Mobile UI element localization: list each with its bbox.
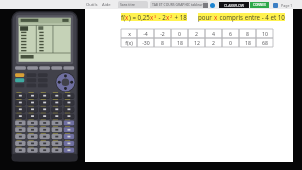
staticText: 0: [229, 39, 232, 46]
staticText: 8: [246, 30, 249, 37]
staticText: Page 1: [281, 3, 293, 8]
staticText: + 18: [173, 13, 187, 21]
staticText: ) = 0,25: [129, 13, 150, 21]
staticText: 0: [178, 30, 181, 37]
staticText: 8: [161, 39, 164, 46]
staticText: CONNEX: [253, 3, 266, 7]
button[interactable]: CONNEX: [250, 2, 269, 8]
staticText: -30: [142, 39, 150, 46]
staticText: f(x): [125, 39, 133, 46]
staticText: 2: [195, 30, 198, 37]
staticText: x: [128, 30, 131, 37]
button[interactable]: Graphing calculator video: [0, 9, 79, 167]
staticText: 18: [245, 39, 251, 46]
staticText: Aide: [102, 2, 111, 8]
staticText: 18: [177, 39, 183, 46]
staticText: 10: [262, 30, 268, 37]
button[interactable]: TAB ET COURS GRAPHIC tableur: [150, 1, 208, 8]
staticText: x: [214, 13, 218, 21]
staticText: 4: [212, 30, 215, 37]
staticText: x: [166, 13, 170, 21]
staticText: f(: [121, 13, 125, 21]
staticText: pour: [198, 13, 214, 21]
staticText: compris entre - 4 et 10: [218, 13, 285, 21]
staticText: Outils: [86, 2, 98, 8]
button[interactable]: CLASSFLOW: [219, 2, 249, 8]
staticText: x: [125, 13, 129, 21]
staticText: 12: [194, 39, 200, 46]
button[interactable]: Account: [210, 3, 215, 8]
staticText: x: [150, 13, 154, 21]
staticText: 68: [262, 39, 268, 46]
staticText: CLASSFLOW: [224, 3, 245, 8]
staticText: -2: [160, 30, 165, 37]
button[interactable]: Sans titre: [118, 1, 148, 8]
staticText: 2: [212, 39, 215, 46]
staticText: -4: [143, 30, 148, 37]
staticText: 3: [154, 14, 157, 19]
staticText: Sans titre: [120, 2, 135, 7]
button[interactable]: Extension: [273, 3, 278, 8]
staticText: 6: [229, 30, 232, 37]
staticText: TAB ET COURS GRAPHIC tableur: [152, 2, 203, 7]
staticText: - 2: [157, 13, 166, 21]
staticText: 2: [170, 14, 173, 19]
